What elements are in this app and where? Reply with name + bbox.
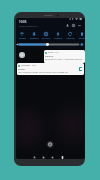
staticText: now xyxy=(32,64,36,67)
staticText: Friday, December 23 xyxy=(19,25,38,28)
staticText: Your Wrapped is ready. Find out what 202… xyxy=(18,71,68,74)
button[interactable]: User xyxy=(65,23,70,28)
staticText: Bluetooth xyxy=(30,37,39,39)
staticText: Gmail xyxy=(48,51,54,54)
staticText: Do Not Di xyxy=(42,37,51,39)
button[interactable]: App 2 xyxy=(41,155,46,159)
button[interactable]: App 3 xyxy=(50,155,55,159)
button[interactable]: Power xyxy=(77,23,82,28)
button[interactable]: Auto-rotat xyxy=(64,31,76,40)
button[interactable]: Internet xyxy=(16,31,28,40)
staticText: Messages xyxy=(21,64,31,67)
button[interactable]: Flashlight xyxy=(52,31,64,40)
button[interactable]: Settings xyxy=(71,23,76,28)
button[interactable]: App 1 xyxy=(32,155,37,159)
staticText: Flashlight xyxy=(54,37,63,39)
button[interactable]: Gmail xyxy=(44,50,85,63)
button[interactable]: App 4 xyxy=(60,155,65,159)
staticText: 7:01 xyxy=(55,51,59,54)
staticText: Reminder for Later — tomorrow. Send me b… xyxy=(45,58,84,61)
staticText: Spotify xyxy=(18,68,25,71)
staticText: Auto-rotat xyxy=(66,37,75,39)
staticText: Internet xyxy=(19,37,26,39)
button[interactable]: Do Not Di xyxy=(40,31,52,40)
button[interactable]: Messages xyxy=(17,63,84,75)
staticText: Battery xyxy=(79,37,85,39)
button[interactable]: Bluetooth xyxy=(28,31,40,40)
staticText: 10:05 xyxy=(19,20,27,24)
button[interactable]: Album art xyxy=(79,67,82,71)
staticText: Sarah M. xyxy=(45,55,54,58)
button[interactable]: Battery xyxy=(76,31,85,40)
